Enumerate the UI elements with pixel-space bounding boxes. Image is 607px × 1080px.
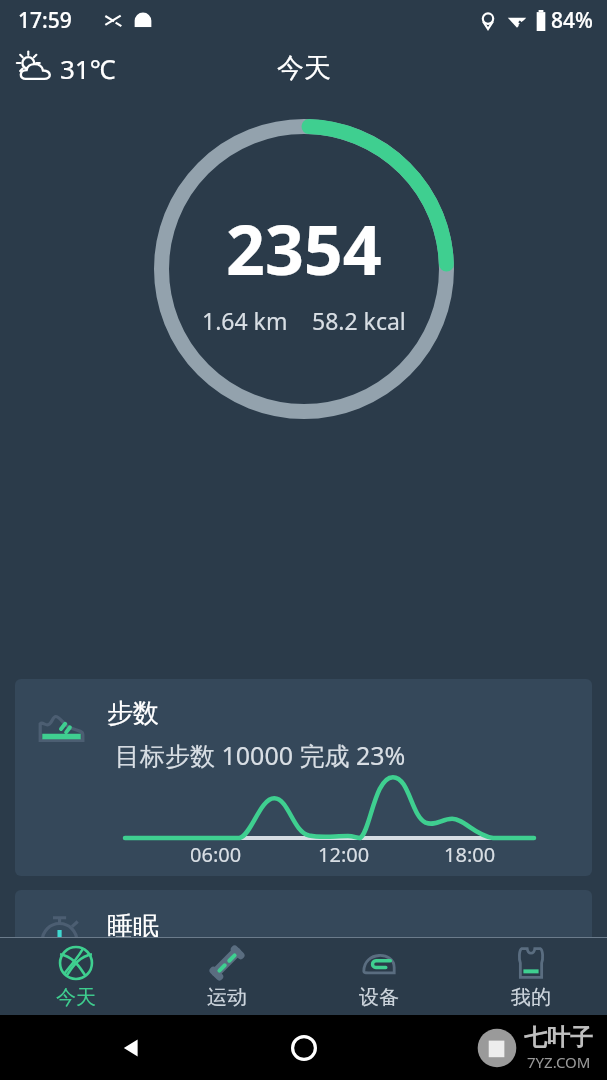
staticText: 7YZ.COM — [527, 1052, 591, 1072]
staticText: 84% — [551, 6, 593, 35]
staticText: 目标步数 10000 完成 23% — [115, 738, 406, 772]
button[interactable]: 运动 — [151, 938, 303, 1015]
staticText: 运动 — [207, 985, 247, 1010]
button[interactable]: 我的 — [455, 938, 607, 1015]
staticText: 58.2 kcal — [312, 305, 406, 336]
staticText: 今天 — [56, 985, 96, 1010]
button[interactable]: Steps — [15, 679, 592, 876]
staticText: 设备 — [359, 985, 399, 1010]
staticText: 06:00 — [190, 841, 242, 868]
staticText: 今天 — [277, 51, 331, 85]
staticText: 七叶子 — [524, 1023, 593, 1052]
other: Steps — [35, 703, 87, 755]
staticText: 12:00 — [318, 841, 370, 868]
staticText: 睡眠 — [107, 910, 159, 943]
staticText: 我的 — [511, 985, 551, 1010]
staticText: 31℃ — [60, 51, 116, 86]
staticText: 17:59 — [18, 6, 72, 35]
staticText: 步数 — [107, 697, 159, 730]
button[interactable]: 设备 — [303, 938, 455, 1015]
button[interactable]: Sleep — [15, 890, 592, 1080]
other: Back — [116, 1033, 146, 1063]
button[interactable]: 今天 — [0, 938, 151, 1015]
staticText: 18:00 — [444, 841, 496, 868]
other: Home — [289, 1033, 319, 1063]
staticText: 1.64 km — [202, 305, 288, 336]
staticText: 睡眠时长 8时20分 — [107, 951, 307, 985]
staticText: 2354 — [226, 202, 382, 295]
other: Sleep — [37, 912, 85, 960]
other: Weather — [14, 47, 56, 89]
button[interactable]: Weather — [14, 47, 116, 89]
